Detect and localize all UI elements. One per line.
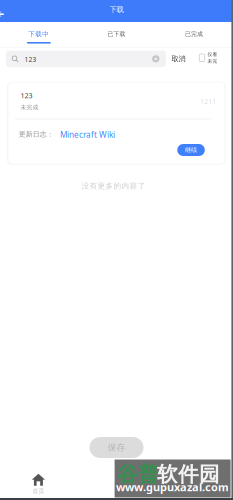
staticText: 已完成 (185, 30, 203, 38)
button[interactable]: 取消 (169, 51, 187, 67)
staticText: 123 (21, 91, 33, 100)
staticText: 已下载 (107, 30, 125, 38)
button[interactable]: 仅看 (199, 52, 217, 64)
staticText: 继续 (185, 146, 197, 154)
staticText: 仅看 (207, 51, 217, 57)
button[interactable]: 首页 (18, 471, 58, 497)
staticText: 123 (25, 55, 37, 64)
staticText: 下载 (109, 5, 123, 14)
staticText: 1211 (200, 97, 216, 106)
staticText: 没有更多的内容了 (81, 181, 145, 191)
button[interactable]: 已完成 (155, 26, 233, 42)
staticText: 谷普 (117, 461, 159, 487)
button[interactable]: 保存 (89, 437, 143, 458)
staticText: 取消 (171, 54, 185, 63)
button[interactable]: Back (0, 0, 14, 22)
button[interactable]: 继续 (177, 144, 205, 156)
staticText: 保存 (107, 442, 125, 453)
staticText: 未完成 (21, 104, 39, 111)
button[interactable]: Clear (150, 51, 162, 67)
staticText: 更新日志： (19, 130, 54, 138)
staticText: www.gupuxazal.com (116, 480, 229, 494)
staticText: 未完 (207, 58, 217, 64)
staticText: 软件园 (157, 461, 220, 487)
staticText: Minecraft Wiki (60, 129, 115, 140)
staticText: 首页 (32, 487, 44, 495)
button[interactable]: 下载中 (0, 26, 78, 52)
staticText: 下载中 (28, 30, 49, 38)
button[interactable]: 已下载 (78, 26, 155, 42)
